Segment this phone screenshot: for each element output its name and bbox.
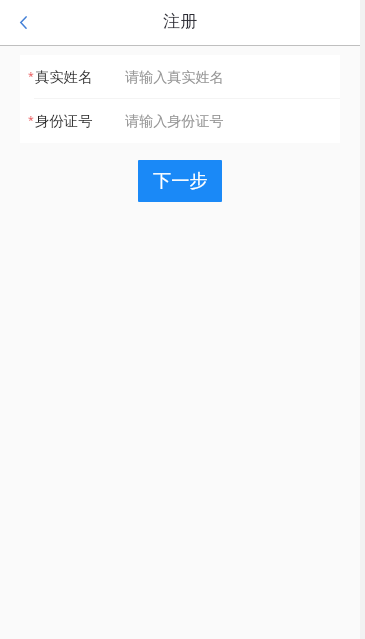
staticText: 请输入身份证号: [125, 112, 224, 130]
staticText: *: [28, 113, 34, 127]
staticText: 身份证号: [35, 112, 93, 130]
staticText: *: [28, 69, 34, 83]
button[interactable]: 下一步: [138, 160, 222, 202]
button[interactable]: *: [20, 99, 340, 143]
staticText: 注册: [163, 10, 198, 32]
staticText: 真实姓名: [35, 68, 93, 86]
staticText: 请输入真实姓名: [125, 68, 224, 86]
button[interactable]: Back: [0, 0, 46, 45]
button[interactable]: *: [20, 55, 340, 98]
staticText: 下一步: [153, 169, 208, 192]
